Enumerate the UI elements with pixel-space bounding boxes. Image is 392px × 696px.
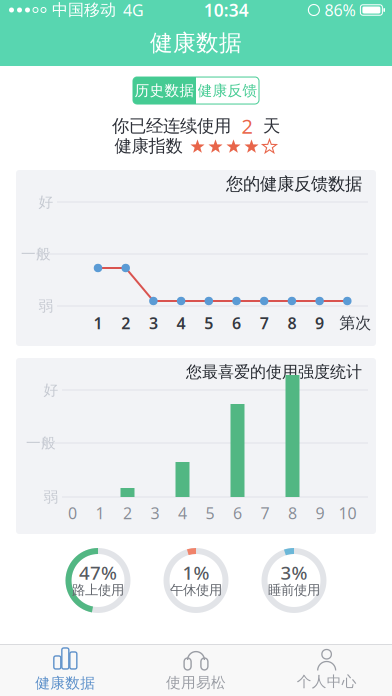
staticText: 9: [315, 502, 324, 524]
staticText: 5: [205, 502, 214, 524]
staticText: 9: [315, 312, 324, 334]
staticText: 6: [233, 502, 242, 524]
staticText: 好: [43, 381, 58, 399]
button[interactable]: 历史数据: [133, 77, 196, 104]
button[interactable]: 个人中心: [261, 645, 392, 695]
staticText: 使用易松: [166, 673, 226, 691]
button[interactable]: 使用易松: [131, 645, 261, 695]
staticText: 弱: [43, 488, 58, 506]
staticText: 7: [260, 502, 269, 524]
staticText: 您的健康反馈数据: [226, 173, 362, 195]
staticText: 4G: [123, 0, 144, 21]
staticText: 午休使用: [170, 582, 222, 598]
staticText: 0: [68, 502, 77, 524]
staticText: 一般: [26, 434, 56, 452]
staticText: 86%: [324, 0, 355, 21]
staticText: 天: [263, 115, 280, 137]
staticText: 1: [95, 502, 104, 524]
staticText: 3%: [280, 560, 307, 585]
staticText: 7: [260, 312, 269, 334]
staticText: 一般: [21, 245, 51, 263]
staticText: 1: [93, 312, 102, 334]
staticText: 弱: [38, 297, 53, 315]
staticText: 4: [178, 502, 187, 524]
staticText: 第次: [339, 313, 371, 333]
staticText: 健康指数: [114, 135, 182, 157]
staticText: 中国移动: [52, 0, 116, 20]
staticText: 2: [241, 113, 252, 139]
staticText: 你已经连续使用: [112, 115, 231, 137]
staticText: 好: [38, 193, 53, 211]
staticText: 路上使用: [72, 582, 124, 598]
staticText: 6: [232, 312, 241, 334]
staticText: 历史数据: [134, 81, 194, 99]
staticText: 1%: [182, 560, 209, 585]
staticText: 8: [288, 502, 297, 524]
staticText: 3: [149, 312, 158, 334]
staticText: 3: [150, 502, 159, 524]
staticText: 健康反馈: [197, 81, 257, 99]
staticText: 10: [338, 502, 356, 524]
staticText: 2: [121, 312, 130, 334]
staticText: 健康数据: [150, 29, 242, 57]
staticText: 10:34: [204, 0, 249, 21]
button[interactable]: 健康数据: [0, 645, 131, 695]
staticText: 您最喜爱的使用强度统计: [186, 362, 362, 382]
staticText: 健康数据: [35, 674, 95, 692]
staticText: 个人中心: [297, 672, 357, 690]
staticText: 2: [123, 502, 132, 524]
staticText: 47%: [79, 560, 117, 585]
staticText: 4: [177, 312, 186, 334]
button[interactable]: 健康反馈: [196, 77, 259, 104]
staticText: 睡前使用: [268, 582, 320, 598]
staticText: 5: [204, 312, 213, 334]
staticText: 8: [287, 312, 296, 334]
